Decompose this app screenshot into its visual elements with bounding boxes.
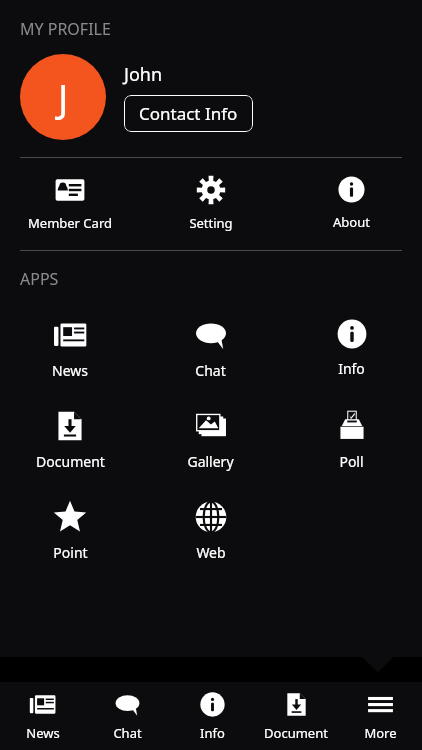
button[interactable]: Poll: [281, 409, 422, 471]
staticText: MY PROFILE: [20, 18, 111, 40]
staticText: About: [333, 213, 370, 231]
staticText: Info: [200, 724, 225, 742]
button[interactable]: Info: [170, 682, 254, 750]
button[interactable]: Point: [0, 500, 140, 562]
button[interactable]: J: [20, 54, 106, 140]
staticText: Chat: [195, 361, 226, 380]
button[interactable]: Gallery: [140, 409, 281, 471]
button[interactable]: Setting: [140, 175, 281, 232]
button[interactable]: News: [0, 682, 85, 750]
staticText: News: [52, 361, 88, 380]
button[interactable]: Info: [281, 318, 422, 378]
button[interactable]: About: [281, 175, 422, 231]
button[interactable]: Contact Info: [124, 95, 253, 132]
button[interactable]: Web: [140, 500, 281, 562]
staticText: News: [26, 724, 60, 742]
staticText: J: [58, 71, 69, 123]
button[interactable]: Document: [0, 409, 140, 471]
button[interactable]: Chat: [85, 682, 170, 750]
staticText: Setting: [189, 214, 233, 232]
button[interactable]: Document: [254, 682, 338, 750]
staticText: More: [364, 724, 397, 742]
button[interactable]: News: [0, 318, 140, 380]
staticText: Point: [53, 543, 88, 562]
button[interactable]: More: [338, 682, 422, 750]
staticText: Document: [36, 452, 105, 471]
staticText: Document: [264, 724, 328, 742]
button[interactable]: Member Card: [0, 175, 140, 232]
staticText: APPS: [20, 268, 59, 290]
staticText: Poll: [339, 452, 364, 471]
staticText: John: [124, 62, 163, 87]
staticText: Member Card: [28, 214, 112, 232]
staticText: Web: [196, 543, 226, 562]
staticText: Chat: [113, 724, 142, 742]
button[interactable]: Chat: [140, 318, 281, 380]
staticText: Contact Info: [139, 102, 238, 125]
staticText: Info: [338, 359, 365, 378]
staticText: Gallery: [187, 452, 234, 471]
